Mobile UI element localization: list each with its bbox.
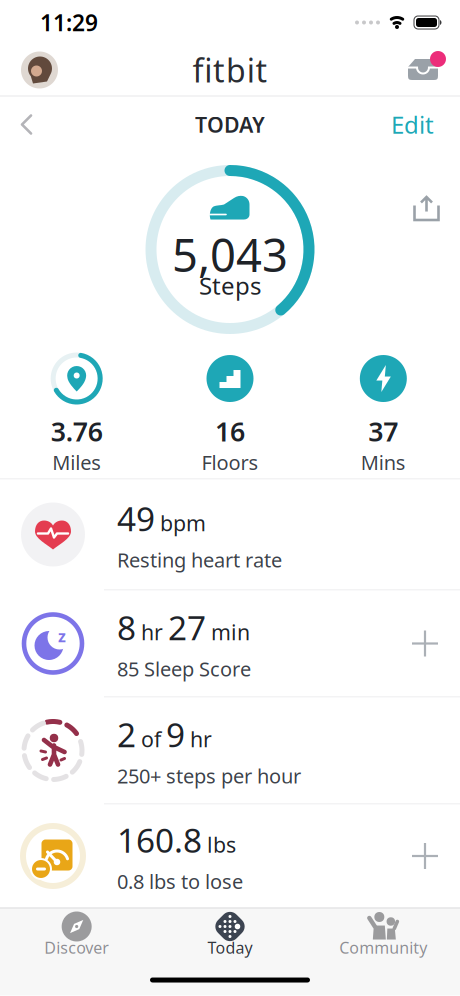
button[interactable]: Profile <box>0 51 58 88</box>
staticText: hr <box>190 725 212 753</box>
staticText: 16 <box>215 413 245 449</box>
button[interactable]: 49 <box>0 479 460 589</box>
staticText: 8 <box>117 605 136 649</box>
staticText: Floors <box>201 449 258 475</box>
staticText: hr <box>141 618 163 646</box>
staticText: Resting heart rate <box>117 546 282 573</box>
button[interactable]: Discover <box>0 908 153 966</box>
staticText: of <box>141 725 161 753</box>
staticText: min <box>211 618 250 646</box>
staticText: Mins <box>361 449 406 475</box>
staticText: 2 <box>117 712 136 756</box>
button[interactable]: Share <box>413 195 460 221</box>
staticText: fitbit <box>192 49 267 91</box>
staticText: Edit <box>391 109 434 140</box>
staticText: 11:29 <box>40 7 98 37</box>
staticText: 5,043 <box>172 224 288 285</box>
staticText: 49 <box>117 496 155 540</box>
staticText: 3.76 <box>51 413 103 449</box>
button[interactable]: Back <box>0 113 34 135</box>
staticText: TODAY <box>195 110 265 139</box>
staticText: Miles <box>52 449 101 475</box>
button[interactable]: 160.8 <box>0 804 460 907</box>
staticText: 250+ steps per hour <box>117 762 301 789</box>
staticText: 27 <box>168 605 206 649</box>
staticText: 0.8 lbs to lose <box>117 868 243 894</box>
button[interactable]: Today <box>153 908 307 966</box>
staticText: lbs <box>207 830 236 858</box>
staticText: z <box>58 625 66 647</box>
button[interactable]: Messages <box>407 56 460 84</box>
staticText: 9 <box>166 712 185 756</box>
staticText: Today <box>207 937 252 958</box>
staticText: 160.8 <box>117 818 202 862</box>
button[interactable]: 2 <box>0 697 460 803</box>
staticText: 85 Sleep Score <box>117 655 251 682</box>
button[interactable]: z <box>0 590 460 696</box>
staticText: Steps <box>199 270 261 301</box>
button[interactable]: Community <box>307 908 460 966</box>
staticText: bpm <box>160 509 206 537</box>
staticText: 37 <box>368 413 398 449</box>
staticText: Community <box>339 937 427 958</box>
staticText: Discover <box>44 937 109 958</box>
button[interactable]: Edit <box>391 109 460 140</box>
